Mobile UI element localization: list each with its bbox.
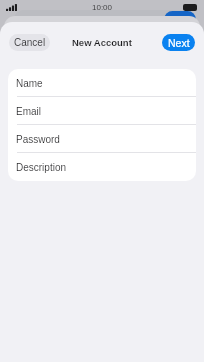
button[interactable]: Next bbox=[162, 34, 195, 51]
other: Battery bbox=[183, 4, 197, 11]
staticText: Next bbox=[168, 37, 190, 49]
staticText: 10:00 bbox=[92, 3, 113, 12]
button[interactable]: Email bbox=[8, 97, 196, 125]
other: Cellular signal bbox=[6, 4, 17, 11]
staticText: Name bbox=[16, 78, 43, 89]
staticText: Description bbox=[16, 162, 67, 173]
staticText: Cancel bbox=[14, 37, 46, 48]
button[interactable]: Cancel bbox=[9, 34, 50, 51]
button[interactable]: Password bbox=[8, 125, 196, 153]
staticText: New Account bbox=[72, 37, 132, 48]
button[interactable]: Name bbox=[8, 69, 196, 97]
staticText: Email bbox=[16, 106, 42, 117]
button[interactable]: Description bbox=[8, 153, 196, 181]
staticText: Password bbox=[16, 134, 60, 145]
